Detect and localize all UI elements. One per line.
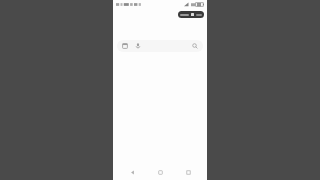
button[interactable]: Notification chip: [178, 11, 204, 18]
button[interactable]: Recent apps: [179, 164, 197, 180]
button[interactable]: Voice search: [134, 42, 142, 50]
button[interactable]: Back: [123, 164, 141, 180]
button[interactable]: Tabs: [117, 40, 203, 52]
button[interactable]: Search: [191, 42, 199, 50]
button[interactable]: Home: [151, 164, 169, 180]
button[interactable]: Tabs: [121, 42, 129, 50]
